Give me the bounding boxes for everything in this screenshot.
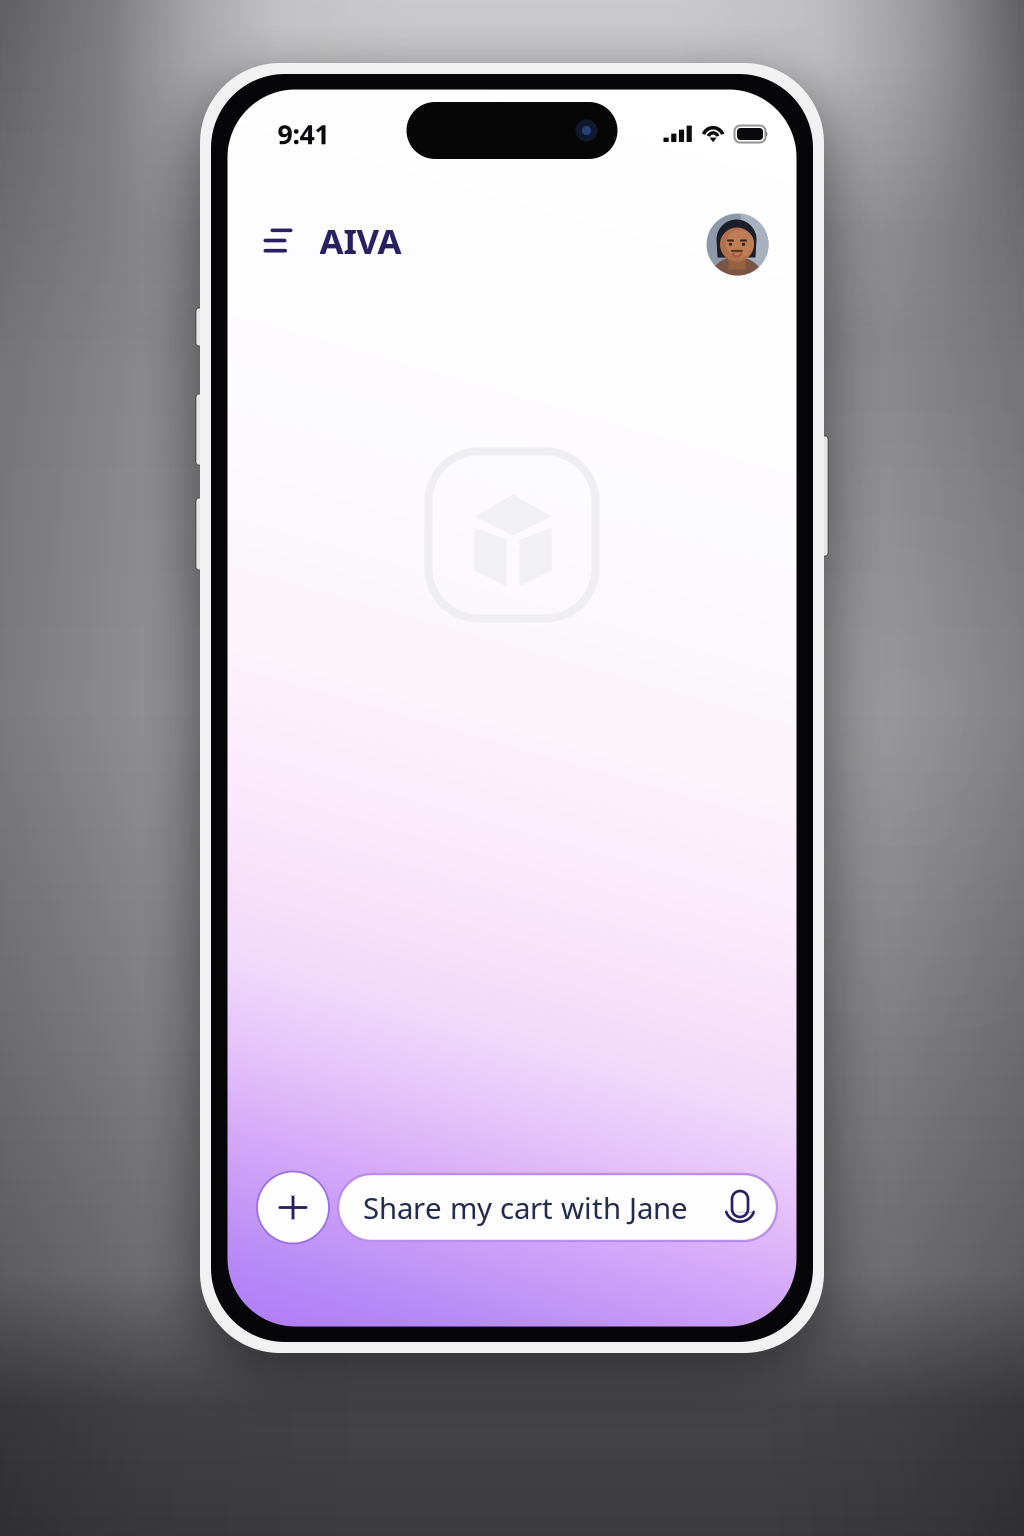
button[interactable]: Menu [254, 209, 301, 271]
staticText: Share my cart with Jane [363, 1188, 688, 1227]
staticText: 9:41 [277, 116, 329, 152]
button[interactable]: Account [706, 209, 768, 271]
button[interactable]: Add [257, 1171, 329, 1243]
staticText: AIVA [319, 217, 401, 263]
button[interactable]: Share my cart with Jane [338, 1174, 777, 1241]
